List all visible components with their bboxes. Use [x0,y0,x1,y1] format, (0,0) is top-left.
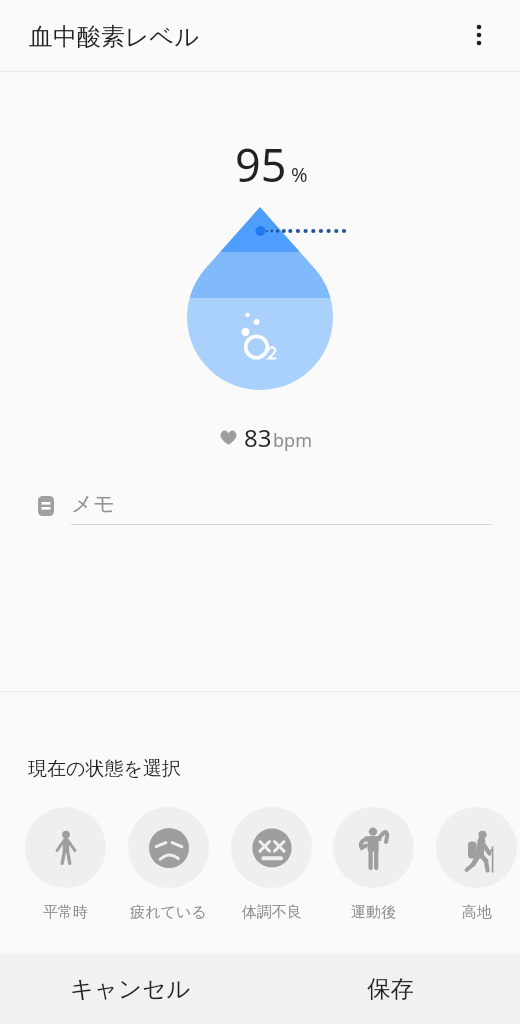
staticText: 95 [235,134,287,195]
staticText: 運動後 [351,903,396,922]
button[interactable]: キャンセル [0,953,260,1024]
button[interactable]: 平常時 [25,807,106,922]
staticText: 血中酸素レベル [29,22,199,52]
button[interactable]: メモ [0,488,520,528]
staticText: 83 [244,421,272,454]
staticText: 体調不良 [242,903,302,922]
staticText: bpm [273,428,312,453]
staticText: 平常時 [43,903,88,922]
button[interactable]: 高地 [436,807,517,922]
button[interactable]: More options [453,9,505,61]
staticText: % [291,161,308,188]
staticText: メモ [71,490,116,517]
staticText: 保存 [367,974,414,1004]
button[interactable]: 疲れている [128,807,209,922]
staticText: 現在の状態を選択 [28,757,181,781]
button[interactable]: 体調不良 [231,807,312,922]
button[interactable]: 保存 [260,953,520,1024]
staticText: キャンセル [70,974,191,1004]
staticText: 疲れている [130,903,207,922]
button[interactable]: 運動後 [333,807,414,922]
staticText: 高地 [462,903,492,922]
